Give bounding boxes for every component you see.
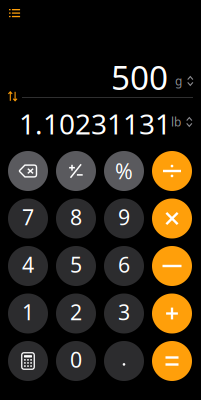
button[interactable]: Decimal point: [104, 341, 144, 381]
button[interactable]: Swap units: [8, 91, 17, 102]
button[interactable]: 5: [56, 246, 96, 286]
button[interactable]: 7: [8, 198, 48, 238]
button[interactable]: Percent: [104, 151, 144, 191]
button[interactable]: 9: [104, 198, 144, 238]
staticText: 1.10231131: [19, 105, 171, 142]
staticText: 8: [70, 203, 82, 231]
staticText: 2: [70, 298, 82, 326]
button[interactable]: Multiply: [152, 198, 192, 238]
button[interactable]: Change target unit: [168, 111, 196, 133]
button[interactable]: Change source unit: [172, 70, 197, 92]
button[interactable]: 6: [104, 246, 144, 286]
button[interactable]: Plus: [152, 293, 192, 333]
staticText: lb: [171, 114, 181, 130]
button[interactable]: Delete: [8, 151, 48, 191]
staticText: 6: [118, 250, 130, 279]
staticText: 7: [22, 203, 34, 231]
button[interactable]: Plus minus: [56, 151, 96, 191]
button[interactable]: 8: [56, 198, 96, 238]
button[interactable]: Minus: [152, 246, 192, 286]
staticText: 9: [118, 203, 130, 231]
button[interactable]: 4: [8, 246, 48, 286]
button[interactable]: 0: [56, 341, 96, 381]
button[interactable]: 1: [8, 293, 48, 333]
button[interactable]: 3: [104, 293, 144, 333]
staticText: 3: [118, 298, 130, 326]
button[interactable]: Equals: [152, 341, 192, 381]
staticText: 5: [70, 250, 82, 279]
staticText: 1: [22, 298, 34, 326]
staticText: 4: [22, 250, 34, 279]
button[interactable]: Calculator: [8, 341, 48, 381]
staticText: 500: [111, 55, 168, 99]
staticText: g: [175, 73, 182, 89]
staticText: 0: [70, 345, 82, 374]
button[interactable]: Divide: [152, 151, 192, 191]
button[interactable]: 2: [56, 293, 96, 333]
button[interactable]: History: [0, 0, 28, 25]
staticText: %: [115, 157, 133, 185]
